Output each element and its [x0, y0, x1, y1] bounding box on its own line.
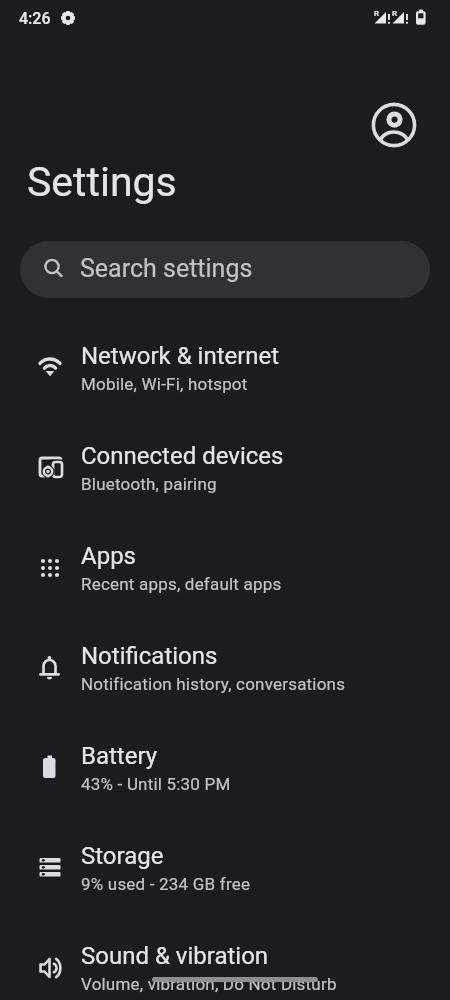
staticText: Battery — [81, 742, 158, 770]
button[interactable]: Storage — [0, 818, 450, 918]
staticText: 4:26 — [19, 9, 51, 28]
staticText: Bluetooth, pairing — [81, 474, 217, 494]
button[interactable]: Search settings — [20, 241, 430, 298]
staticText: Search settings — [80, 254, 253, 283]
button[interactable] — [371, 102, 417, 148]
staticText: Connected devices — [81, 442, 284, 470]
staticText: 43% - Until 5:30 PM — [81, 774, 231, 794]
staticText: Notification history, conversations — [81, 674, 346, 694]
button[interactable]: Apps — [0, 518, 450, 618]
staticText: R — [374, 9, 379, 18]
button[interactable]: Sound & vibration — [0, 918, 450, 1000]
staticText: Apps — [81, 542, 136, 570]
staticText: R — [392, 9, 397, 18]
staticText: Sound & vibration — [81, 942, 269, 970]
staticText: Volume, vibration, Do Not Disturb — [81, 974, 337, 994]
staticText: Storage — [81, 842, 164, 870]
staticText: 9% used - 234 GB free — [81, 874, 251, 894]
button[interactable]: Notifications — [0, 618, 450, 718]
button[interactable]: Network & internet — [0, 318, 450, 418]
staticText: Recent apps, default apps — [81, 574, 282, 594]
button[interactable]: Battery — [0, 718, 450, 818]
staticText: Mobile, Wi-Fi, hotspot — [81, 374, 248, 394]
staticText: Settings — [27, 158, 177, 206]
button[interactable]: Connected devices — [0, 418, 450, 518]
staticText: Notifications — [81, 642, 218, 670]
staticText: Network & internet — [81, 342, 280, 370]
